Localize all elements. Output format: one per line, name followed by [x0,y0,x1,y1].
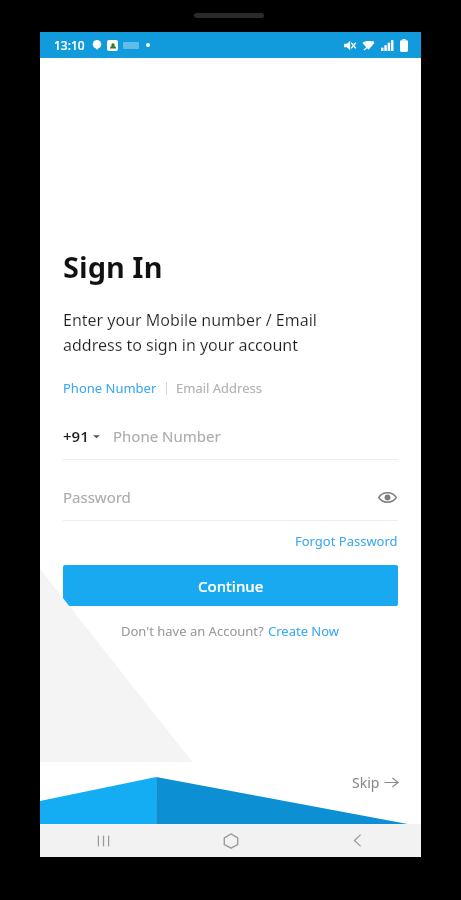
button[interactable]: Skip [352,773,399,792]
button[interactable]: Phone Number [63,379,157,397]
button[interactable]: Recent apps [40,824,167,857]
button[interactable]: +91 [63,422,398,460]
staticText: Email Address [176,379,262,397]
staticText: Continue [198,576,264,596]
button[interactable]: Create Now [268,622,340,640]
button[interactable]: Email Address [176,379,262,397]
staticText: Skip [352,773,380,792]
staticText: Password [63,487,376,507]
staticText: Sign In [63,247,163,286]
button[interactable]: Back [294,824,421,857]
button[interactable]: Continue [63,565,398,606]
button[interactable]: Forgot Password [295,532,398,550]
staticText: Don't have an Account? [121,622,268,640]
staticText: Forgot Password [295,532,398,550]
staticText: +91 [63,426,89,446]
staticText: 13:10 [54,37,85,53]
button[interactable]: Show password [376,486,398,508]
staticText: Create Now [268,622,340,640]
staticText: Phone Number [113,426,221,446]
staticText: Phone Number [63,379,157,397]
staticText: Enter your Mobile number / Email address… [63,309,317,355]
button[interactable]: Password [63,483,398,521]
button[interactable]: Home [167,824,294,857]
